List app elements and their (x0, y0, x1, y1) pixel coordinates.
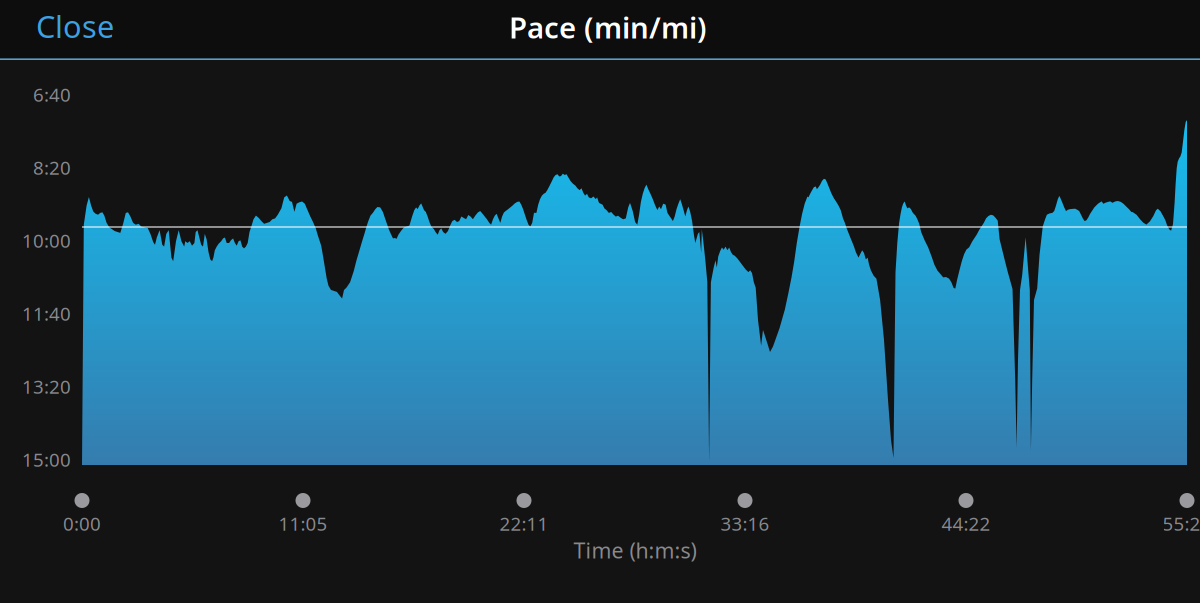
staticText: 11:05 (278, 511, 327, 536)
staticText: Time (h:m:s) (573, 536, 696, 564)
button[interactable]: Close (0, 0, 138, 60)
staticText: 10:00 (22, 228, 71, 253)
staticText: 6:40 (33, 82, 71, 107)
staticText: Pace (min/mi) (509, 8, 707, 47)
staticText: 15:00 (22, 447, 71, 472)
staticText: 0:00 (63, 511, 101, 536)
staticText: 55:27 (1162, 511, 1200, 536)
staticText: 13:20 (22, 374, 71, 399)
staticText: 33:16 (720, 511, 769, 536)
staticText: 11:40 (22, 301, 71, 326)
staticText: Close (36, 6, 114, 46)
staticText: 8:20 (33, 155, 71, 180)
staticText: 22:11 (499, 511, 548, 536)
staticText: 44:22 (941, 511, 990, 536)
